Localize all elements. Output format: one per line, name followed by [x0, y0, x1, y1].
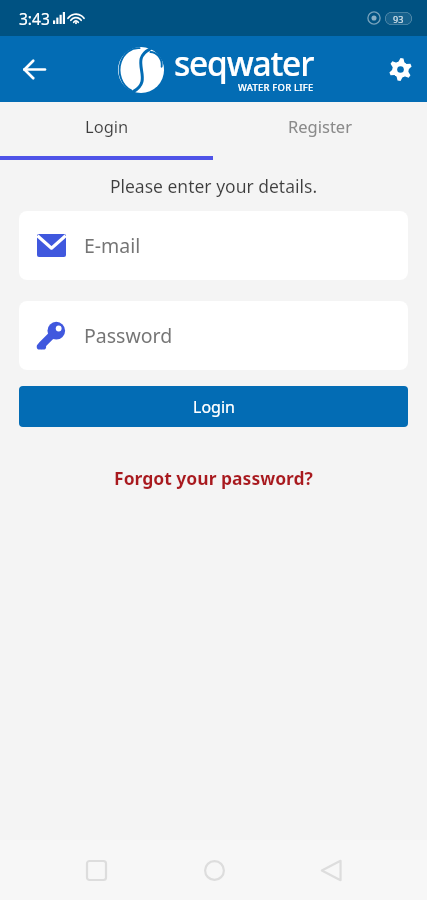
staticText: 3:43 [19, 8, 50, 29]
staticText: Password [84, 322, 173, 349]
button[interactable]: Register [213, 102, 427, 156]
staticText: Login [193, 396, 235, 418]
button[interactable]: E-mail [19, 211, 408, 280]
button[interactable]: Recents [74, 848, 118, 892]
button[interactable]: Password [19, 301, 408, 370]
staticText: 93 [393, 13, 404, 25]
staticText: Register [288, 115, 352, 137]
staticText: WATER FOR LIFE [238, 81, 314, 94]
button[interactable]: Home [192, 848, 236, 892]
button[interactable]: Forgot your password? [19, 462, 408, 494]
button[interactable]: Back [309, 848, 353, 892]
button[interactable]: Settings [380, 49, 420, 89]
button[interactable]: Back [12, 47, 56, 91]
staticText: Forgot your password? [19, 466, 408, 490]
staticText: seqwater [174, 40, 314, 86]
staticText: Please enter your details. [0, 174, 427, 198]
staticText: Login [85, 115, 129, 137]
staticText: E-mail [84, 232, 141, 259]
button[interactable]: Login [19, 386, 408, 427]
button[interactable]: Login [0, 102, 213, 156]
